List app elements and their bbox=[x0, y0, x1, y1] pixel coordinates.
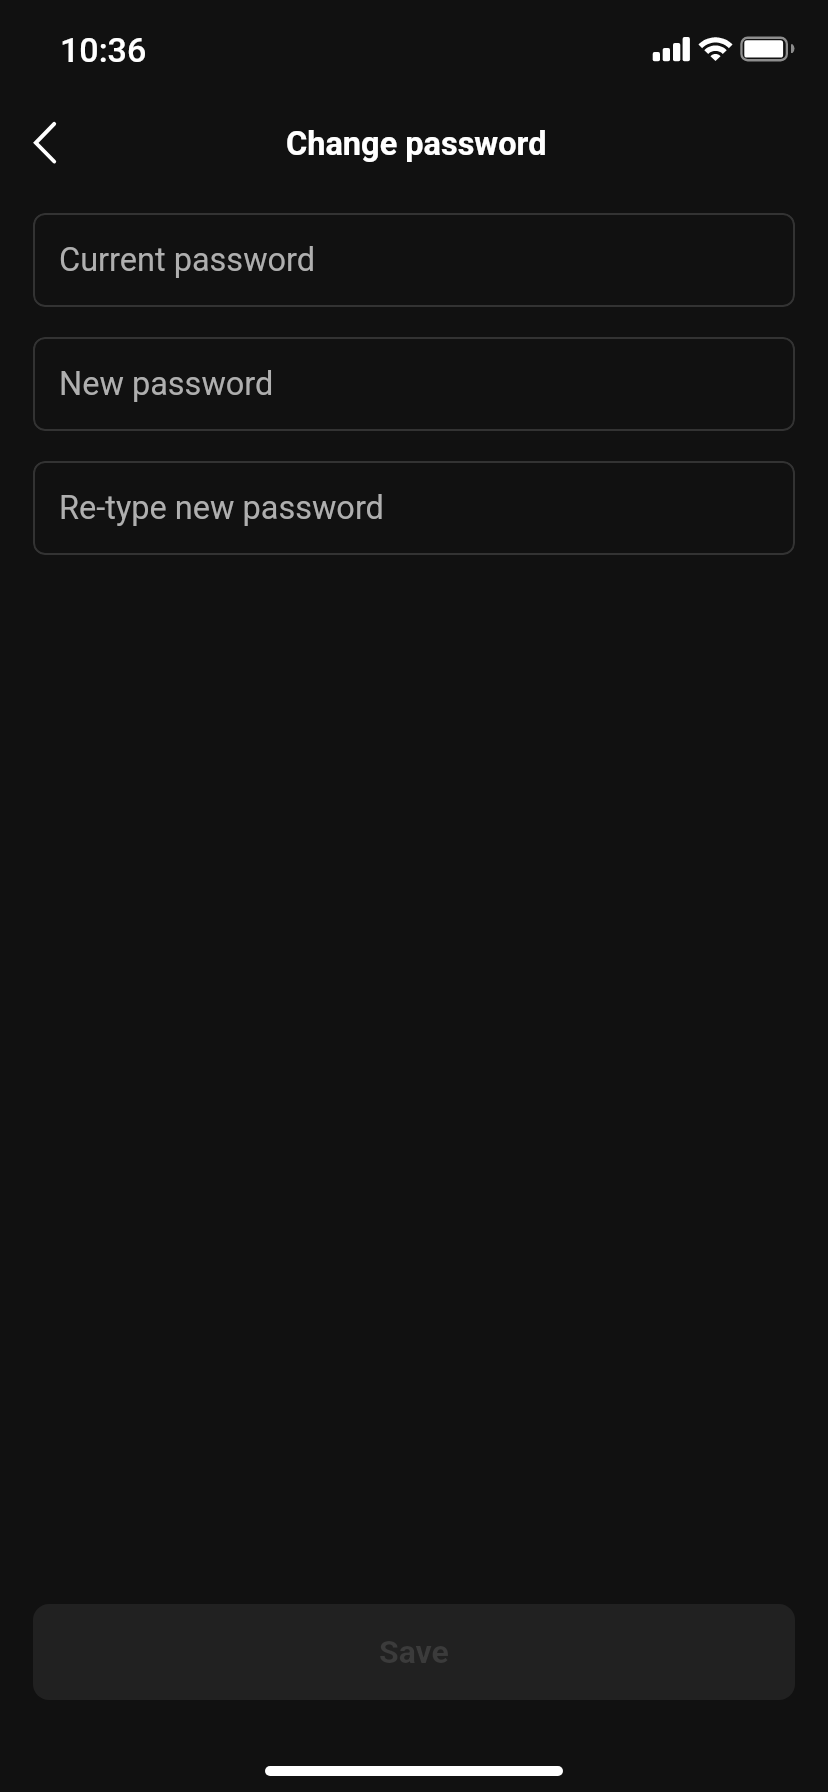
button[interactable]: Re-type new password bbox=[33, 461, 795, 555]
staticText: New password bbox=[59, 365, 274, 403]
staticText: 10:36 bbox=[60, 30, 147, 70]
button[interactable]: Back bbox=[8, 110, 82, 176]
staticText: Current password bbox=[59, 241, 316, 279]
button[interactable]: New password bbox=[33, 337, 795, 431]
staticText: Save bbox=[379, 1633, 449, 1671]
staticText: Re-type new password bbox=[59, 489, 384, 527]
staticText: Change password bbox=[286, 125, 547, 163]
button[interactable]: Current password bbox=[33, 213, 795, 307]
